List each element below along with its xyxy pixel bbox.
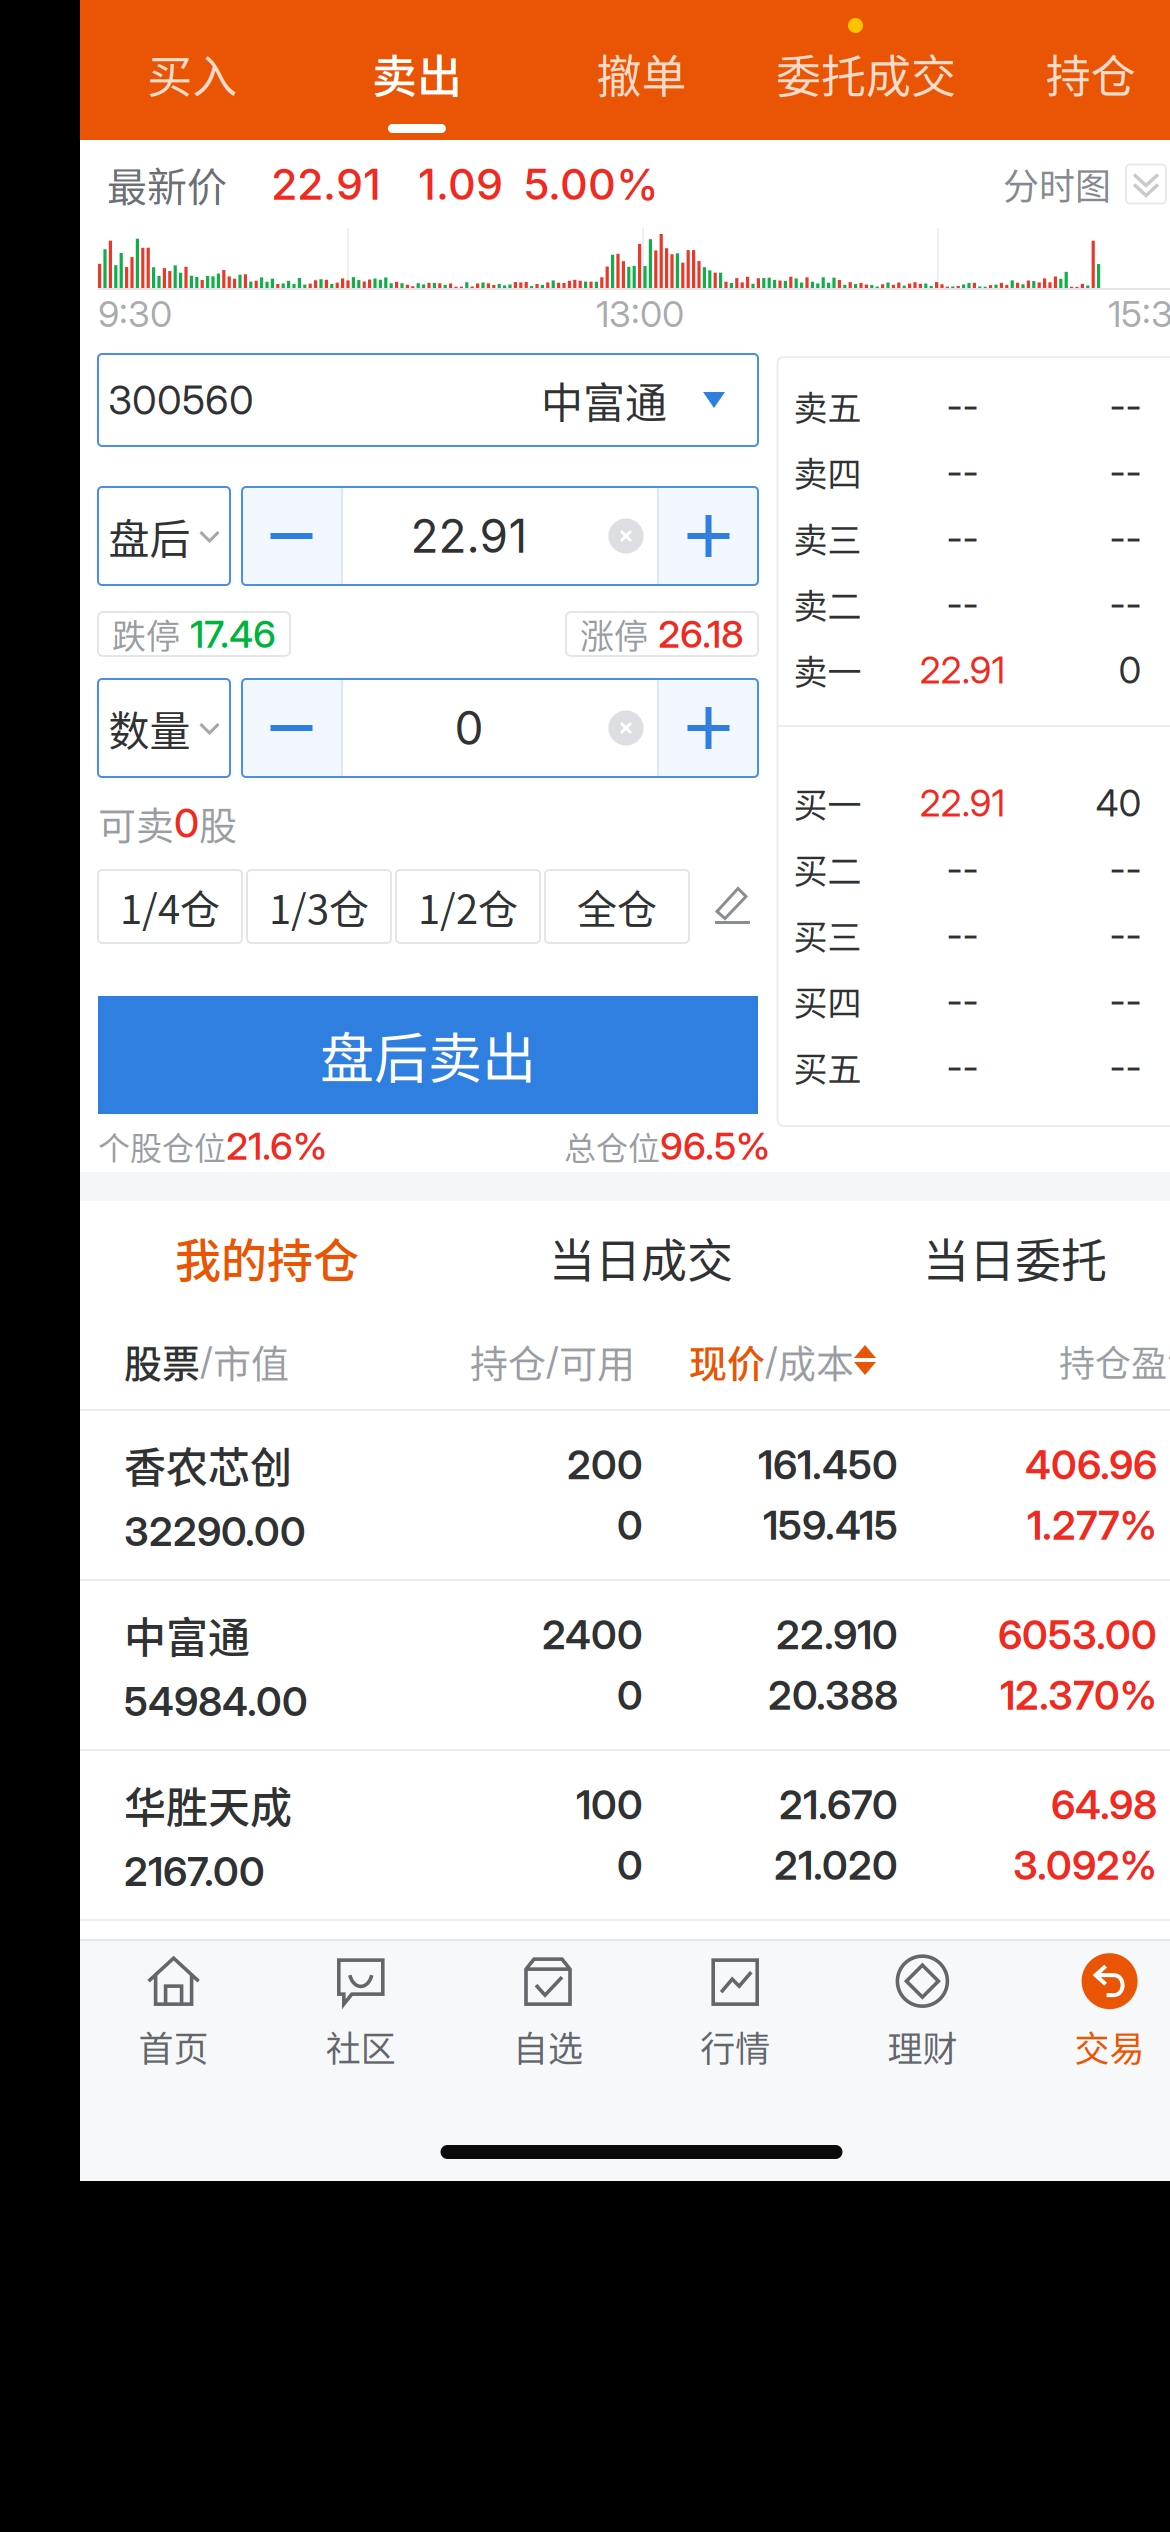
staticText: 交易 [1075, 2021, 1145, 2072]
button[interactable]: 香农芯创 [80, 1411, 1170, 1581]
staticText: 15:30 [1108, 292, 1170, 336]
staticText: 持仓盈亏 [1059, 1335, 1170, 1387]
staticText: 市值 [213, 1333, 289, 1388]
staticText: 最新价 [107, 155, 227, 213]
button[interactable]: 社区 [267, 1953, 454, 2071]
staticText: 华胜天成 [124, 1774, 292, 1835]
button[interactable]: 盘后卖出 [98, 996, 758, 1114]
staticText: -- [1109, 516, 1141, 560]
staticText: 0 [617, 1501, 643, 1549]
staticText: 现价 [689, 1333, 765, 1388]
staticText: 数量 [108, 698, 190, 758]
button[interactable]: 自选 [454, 1953, 642, 2071]
staticText: 22.91 [410, 508, 527, 564]
staticText: 300560 [108, 376, 254, 424]
button[interactable]: 300560 [98, 354, 758, 446]
button[interactable]: 当日委托 [828, 1201, 1170, 1313]
staticText: 3.092% [1013, 1841, 1157, 1889]
staticText: 当日委托 [923, 1224, 1107, 1290]
button[interactable]: Clear [595, 679, 657, 777]
button[interactable]: 行情 [642, 1953, 829, 2071]
staticText: 54984.00 [124, 1677, 308, 1726]
staticText: 买入 [147, 41, 237, 106]
staticText: 13:00 [596, 292, 684, 336]
staticText: 200 [567, 1441, 643, 1489]
button[interactable]: 卖出 [305, 0, 529, 140]
staticText: 22.910 [776, 1611, 898, 1659]
staticText: -- [1109, 979, 1141, 1023]
staticText: 成本 [778, 1333, 854, 1388]
button[interactable]: Clear [595, 487, 657, 585]
button[interactable]: 华胜天成 [80, 1751, 1170, 1921]
staticText: 买四 [793, 976, 861, 1026]
staticText: -- [1109, 450, 1141, 494]
staticText: 盘后卖出 [320, 1016, 536, 1094]
staticText: 0 [174, 799, 199, 847]
staticText: 21.670 [779, 1781, 898, 1829]
staticText: 1.09 [418, 158, 503, 210]
staticText: 6053.00 [998, 1611, 1157, 1659]
staticText: 撤单 [596, 41, 686, 106]
button[interactable]: 持仓 [978, 0, 1170, 140]
staticText: 40 [1095, 781, 1141, 825]
staticText: 96.5% [660, 1123, 770, 1169]
staticText: 持仓 [470, 1333, 546, 1388]
staticText: 9:30 [98, 292, 172, 336]
staticText: 卖一 [793, 645, 861, 695]
button[interactable]: 买入 [80, 0, 305, 140]
staticText: 跌停 [112, 609, 180, 659]
staticText: 159.415 [763, 1501, 898, 1549]
button[interactable]: 分时图 [1003, 158, 1166, 210]
button[interactable]: 全仓 [545, 870, 689, 943]
staticText: 可卖 [98, 795, 174, 850]
button[interactable]: 我的持仓 [80, 1201, 454, 1313]
staticText: 中富通 [541, 370, 667, 430]
staticText: 总仓位 [564, 1123, 660, 1169]
staticText: 卖出 [372, 41, 462, 106]
staticText: 0 [617, 1671, 643, 1719]
staticText: 盘后 [108, 506, 190, 566]
staticText: -- [946, 1045, 978, 1089]
staticText: 64.98 [1051, 1781, 1157, 1829]
staticText: 理财 [887, 2021, 957, 2072]
button[interactable]: 撤单 [529, 0, 754, 140]
staticText: 2167.00 [124, 1847, 265, 1896]
staticText: 社区 [326, 2021, 396, 2072]
button[interactable]: Decrease [242, 679, 341, 777]
button[interactable]: 数量 [98, 679, 230, 777]
staticText: 买二 [793, 844, 861, 894]
staticText: 卖五 [793, 381, 861, 431]
staticText: 22.91 [271, 158, 381, 210]
button[interactable]: Decrease [242, 487, 341, 585]
button[interactable]: 1/2仓 [396, 870, 540, 943]
button[interactable]: Increase [659, 679, 758, 777]
button[interactable]: 中富通 [80, 1581, 1170, 1751]
staticText: 买一 [793, 778, 861, 828]
staticText: 个股仓位 [98, 1123, 226, 1169]
staticText: 委托成交 [776, 41, 956, 106]
button[interactable]: 盘后 [98, 487, 230, 585]
button[interactable]: 理财 [829, 1953, 1016, 2071]
staticText: -- [946, 979, 978, 1023]
staticText: -- [1109, 1045, 1141, 1089]
staticText: 32290.00 [124, 1507, 306, 1556]
button[interactable]: 1/3仓 [247, 870, 391, 943]
button[interactable]: Edit [712, 884, 756, 928]
button[interactable]: 1/4仓 [98, 870, 242, 943]
staticText: / [200, 1338, 213, 1384]
staticText: 26.18 [658, 611, 744, 657]
staticText: 5.00% [523, 158, 659, 210]
staticText: 全仓 [577, 877, 657, 935]
staticText: 首页 [139, 2021, 209, 2072]
staticText: -- [946, 450, 978, 494]
staticText: 0 [454, 700, 483, 756]
button[interactable]: 委托成交 [754, 0, 978, 140]
staticText: 21.020 [774, 1841, 898, 1889]
staticText: 持仓 [1046, 41, 1136, 106]
button[interactable]: 当日成交 [454, 1201, 828, 1313]
button[interactable]: Increase [659, 487, 758, 585]
staticText: 中富通 [124, 1604, 250, 1665]
staticText: 股 [199, 795, 237, 850]
button[interactable]: 交易 [1016, 1953, 1170, 2071]
button[interactable]: 首页 [80, 1953, 267, 2071]
